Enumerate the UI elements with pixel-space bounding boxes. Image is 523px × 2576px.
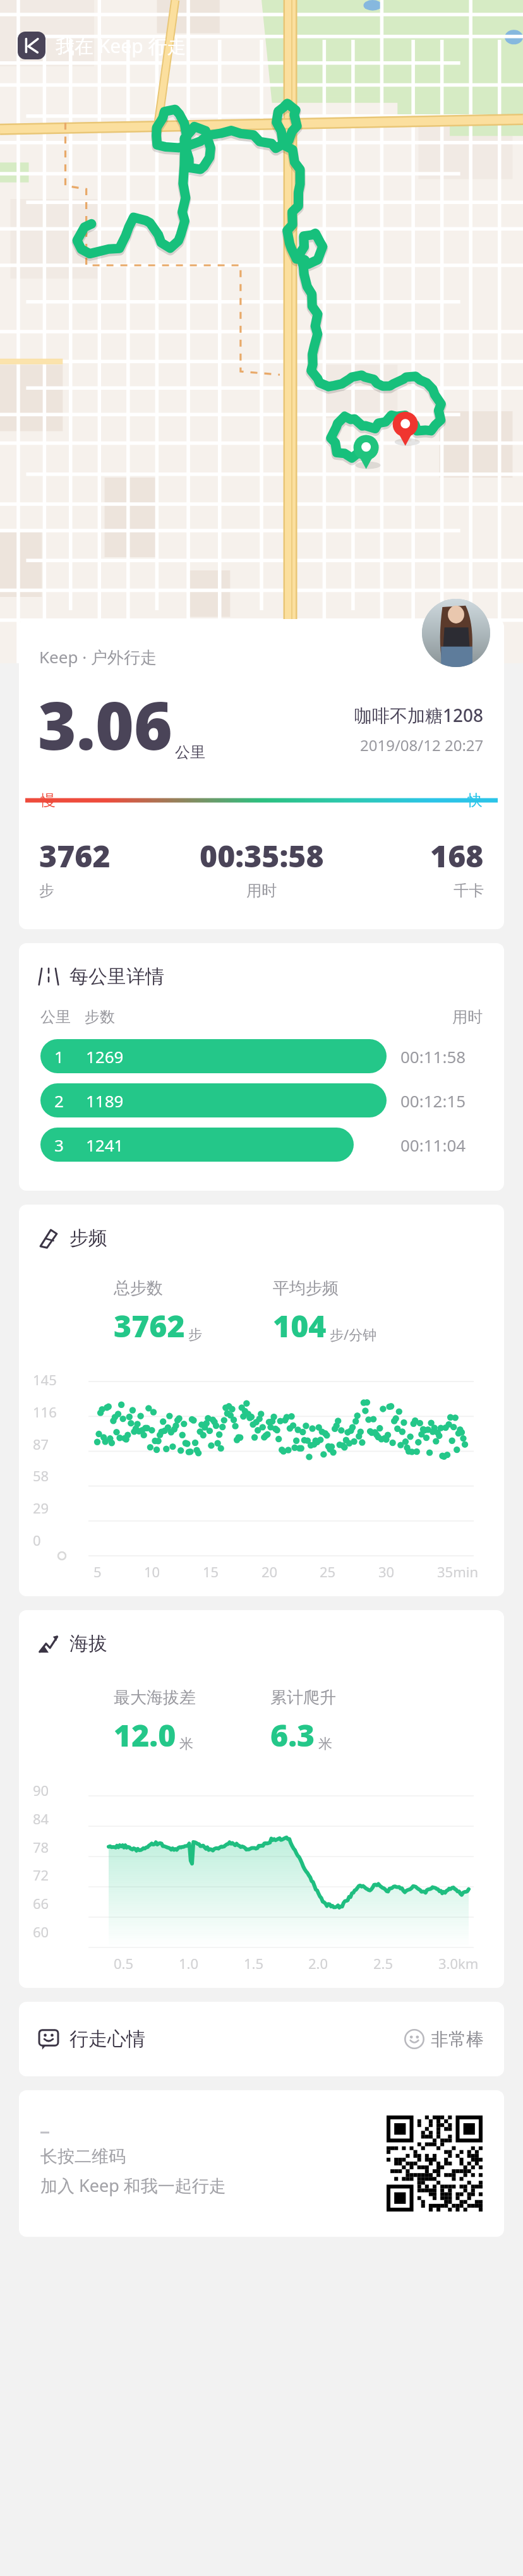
staticText: 3.06 bbox=[38, 680, 172, 769]
staticText: 咖啡不加糖1208 bbox=[354, 703, 484, 727]
button[interactable]: 行走心情 bbox=[38, 2027, 484, 2051]
staticText: 145 bbox=[33, 1370, 57, 1389]
staticText: 海拔 bbox=[69, 1632, 107, 1656]
staticText: 60 bbox=[33, 1922, 49, 1941]
staticText: 2.0 bbox=[308, 1954, 328, 1973]
staticText: 1269 bbox=[86, 1045, 124, 1068]
staticText: 我在 Keep 行走 bbox=[56, 33, 186, 59]
staticText: 72 bbox=[33, 1865, 49, 1884]
staticText: 步 bbox=[39, 881, 54, 900]
staticText: 90 bbox=[33, 1781, 49, 1800]
staticText: 最大海拔差 bbox=[114, 1687, 196, 1708]
button[interactable]: 3 bbox=[40, 1128, 483, 1162]
button[interactable]: 每公里详情 bbox=[38, 965, 484, 989]
staticText: 用时 bbox=[452, 1008, 483, 1026]
staticText: 30 bbox=[378, 1562, 395, 1581]
staticText: 12.0 bbox=[114, 1714, 176, 1755]
staticText: 00:35:58 bbox=[200, 835, 324, 876]
button[interactable]: 2 bbox=[40, 1083, 483, 1117]
staticText: 00:12:15 bbox=[400, 1090, 483, 1112]
staticText: 66 bbox=[33, 1894, 49, 1913]
staticText: 2019/08/12 20:27 bbox=[360, 735, 484, 755]
staticText: 168 bbox=[430, 835, 484, 876]
staticText: 116 bbox=[33, 1402, 57, 1421]
staticText: 步频 bbox=[69, 1226, 107, 1250]
staticText: 千卡 bbox=[454, 881, 484, 900]
staticText: 3 bbox=[54, 1134, 64, 1156]
staticText: 1241 bbox=[86, 1134, 124, 1156]
staticText: 用时 bbox=[246, 881, 277, 900]
staticText: 1.0 bbox=[179, 1954, 199, 1973]
staticText: 104 bbox=[273, 1305, 327, 1346]
staticText: 10 bbox=[144, 1562, 160, 1581]
staticText: 2.5 bbox=[373, 1954, 394, 1973]
button[interactable]: Keep logo bbox=[18, 32, 186, 59]
staticText: 米 bbox=[318, 1735, 332, 1753]
staticText: 00:11:04 bbox=[400, 1134, 483, 1156]
staticText: 87 bbox=[33, 1435, 49, 1454]
staticText: 非常棒 bbox=[431, 2028, 484, 2050]
staticText: 6.3 bbox=[270, 1714, 315, 1755]
other: QR code bbox=[387, 2116, 483, 2212]
staticText: 慢 bbox=[40, 791, 56, 810]
button[interactable]: 1 bbox=[40, 1039, 483, 1073]
button[interactable]: 海拔 bbox=[38, 1632, 484, 1656]
staticText: 78 bbox=[33, 1838, 49, 1857]
staticText: 58 bbox=[33, 1466, 49, 1485]
staticText: 公里 bbox=[175, 743, 205, 762]
staticText: 5 bbox=[93, 1562, 102, 1581]
staticText: 行走心情 bbox=[69, 2027, 145, 2051]
staticText: 长按二维码 bbox=[40, 2146, 126, 2167]
staticText: 步/分钟 bbox=[330, 1325, 377, 1344]
staticText: 1 bbox=[54, 1045, 64, 1068]
staticText: 步数 bbox=[85, 1008, 115, 1026]
staticText: 总步数 bbox=[114, 1278, 163, 1299]
staticText: 1189 bbox=[86, 1090, 124, 1112]
staticText: 0 bbox=[33, 1531, 41, 1550]
button[interactable]: User avatar bbox=[422, 599, 490, 667]
staticText: 步 bbox=[188, 1326, 202, 1344]
staticText: 20 bbox=[261, 1562, 278, 1581]
staticText: 29 bbox=[33, 1498, 49, 1517]
staticText: 0.5 bbox=[114, 1954, 134, 1973]
staticText: 加入 Keep 和我一起行走 bbox=[40, 2174, 226, 2197]
staticText: 快 bbox=[467, 791, 483, 810]
staticText: 公里 bbox=[40, 1008, 71, 1026]
staticText: 米 bbox=[179, 1735, 193, 1753]
staticText: 3762 bbox=[114, 1305, 185, 1346]
staticText: 35min bbox=[437, 1562, 479, 1581]
staticText: 平均步频 bbox=[273, 1278, 339, 1299]
button[interactable]: 步频 bbox=[38, 1226, 484, 1250]
staticText: 25 bbox=[320, 1562, 336, 1581]
button[interactable]: 长按二维码 bbox=[40, 2116, 483, 2212]
other: Keep logo bbox=[18, 32, 45, 59]
staticText: 84 bbox=[33, 1809, 49, 1828]
staticText: 15 bbox=[203, 1562, 219, 1581]
staticText: 每公里详情 bbox=[69, 965, 164, 989]
staticText: 00:11:58 bbox=[400, 1045, 483, 1068]
staticText: 3.0km bbox=[438, 1954, 479, 1973]
staticText: 3762 bbox=[39, 835, 111, 876]
staticText: 累计爬升 bbox=[270, 1687, 336, 1708]
staticText: Keep · 户外行走 bbox=[39, 646, 157, 668]
staticText: 1.5 bbox=[244, 1954, 264, 1973]
staticText: 2 bbox=[54, 1090, 64, 1112]
